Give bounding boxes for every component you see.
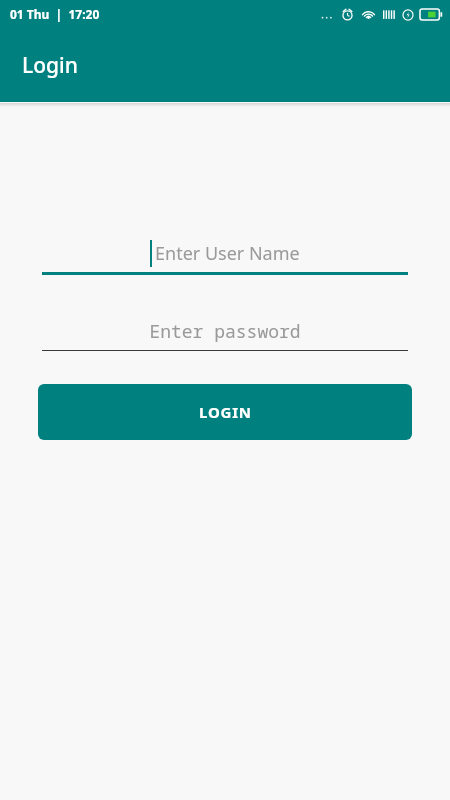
staticText: Login [22,51,78,80]
staticText: Enter User Name [155,241,300,266]
button[interactable]: Enter password [42,315,408,351]
staticText: Enter password [149,319,301,344]
button[interactable]: LOGIN [38,384,412,440]
staticText: 01 Thu | 17:20 [10,6,100,22]
staticText: LOGIN [199,402,252,422]
button[interactable]: Enter User Name [42,235,408,275]
